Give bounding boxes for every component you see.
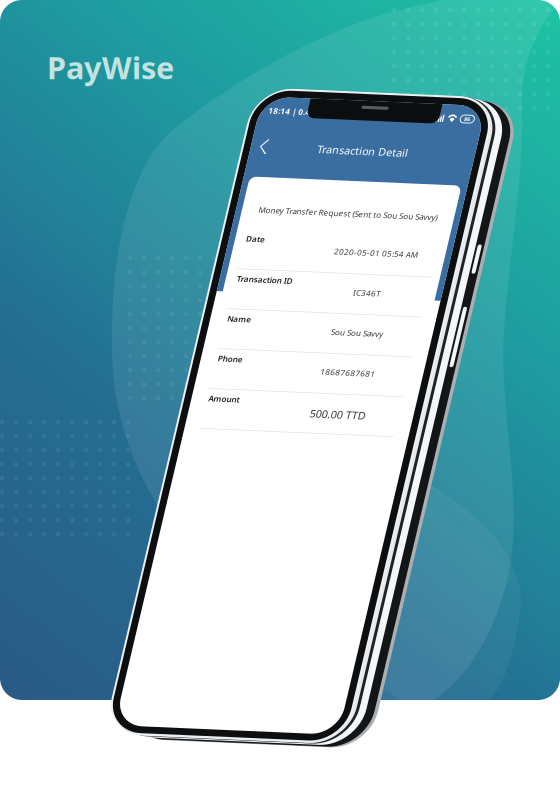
staticText: Sou Sou Savvy xyxy=(388,327,440,338)
staticText: Transaction ID xyxy=(282,277,338,288)
staticText: 2020-05-01 05:54 AM xyxy=(372,245,456,256)
staticText: 86 xyxy=(470,107,476,114)
staticText: Transaction Detail xyxy=(331,140,422,154)
staticText: 500.00 TTD xyxy=(386,409,442,423)
staticText: 18:14 | 0.4K/s xyxy=(274,105,328,115)
button[interactable]: Back xyxy=(265,133,291,162)
staticText: Amount xyxy=(282,400,313,411)
staticText: Money Transfer Request (Sent to Sou Sou … xyxy=(287,206,466,217)
staticText: PayWise xyxy=(47,47,174,88)
staticText: 18687687681 xyxy=(386,368,441,379)
